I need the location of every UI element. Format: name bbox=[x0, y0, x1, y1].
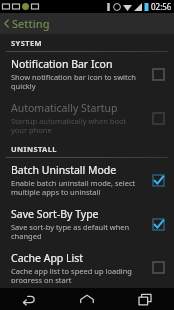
staticText: Cache app list to speed up loading progr… bbox=[11, 266, 144, 283]
staticText: Setting bbox=[12, 16, 50, 31]
button[interactable]: Save Sort-By Type bbox=[0, 202, 174, 246]
button[interactable]: Cache App List bbox=[0, 246, 174, 288]
button[interactable]: Unchecked bbox=[150, 110, 166, 126]
button[interactable]: Batch Uninstall Mode bbox=[0, 158, 174, 202]
staticText: Batch Uninstall Mode bbox=[11, 163, 117, 177]
button[interactable]: Unchecked bbox=[150, 259, 166, 275]
button[interactable]: Unchecked bbox=[150, 66, 166, 82]
staticText: Notification Bar Icon bbox=[11, 57, 113, 71]
staticText: UNINSTALL bbox=[11, 144, 57, 154]
staticText: Cache App List bbox=[11, 251, 84, 265]
button[interactable]: Checked bbox=[150, 172, 166, 188]
button[interactable]: Home bbox=[58, 288, 116, 310]
staticText: Startup automatically when boot your pho… bbox=[11, 116, 144, 135]
button[interactable]: Notification Bar Icon bbox=[0, 52, 174, 96]
staticText: SYSTEM bbox=[11, 38, 42, 48]
button[interactable]: Checked bbox=[150, 216, 166, 232]
staticText: Show notification bar icon to switch qui… bbox=[11, 72, 144, 91]
staticText: Save Sort-By Type bbox=[11, 207, 99, 221]
staticText: Enable batch uninstall mode, select mult… bbox=[11, 178, 144, 197]
button[interactable]: Back bbox=[0, 288, 58, 310]
staticText: 02:56 bbox=[151, 1, 172, 12]
button[interactable]: Recents bbox=[116, 288, 174, 310]
button[interactable]: Automatically Startup bbox=[0, 96, 174, 140]
staticText: Save sort-by type as default when change… bbox=[11, 222, 144, 241]
button[interactable]: Setting bbox=[0, 13, 174, 34]
staticText: Automatically Startup bbox=[11, 101, 118, 115]
